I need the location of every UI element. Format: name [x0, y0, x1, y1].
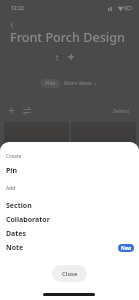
staticText: More ideas: [64, 80, 92, 87]
staticText: Pins: [45, 80, 56, 87]
button[interactable]: Collaborators: [54, 54, 61, 61]
staticText: Add: [6, 185, 16, 192]
button[interactable]: Pin: [0, 164, 139, 178]
staticText: New: [121, 245, 132, 251]
button[interactable]: Dates: [0, 227, 139, 241]
staticText: Note: [6, 243, 24, 253]
button[interactable]: [71, 121, 136, 151]
staticText: Dates: [6, 229, 27, 239]
button[interactable]: Pins: [40, 79, 60, 88]
button[interactable]: Section: [0, 199, 139, 213]
button[interactable]: Add: [6, 105, 17, 116]
staticText: Create: [6, 153, 22, 160]
staticText: Front Porch Design: [10, 29, 125, 46]
button[interactable]: More ideas: [64, 79, 96, 88]
staticText: Close: [62, 270, 78, 278]
staticText: Section: [6, 201, 32, 211]
button[interactable]: Collaborator: [0, 213, 139, 227]
staticText: Select: [113, 107, 130, 114]
button[interactable]: Sort: [21, 105, 33, 117]
button[interactable]: Note: [0, 241, 139, 255]
button[interactable]: Invite: [67, 53, 75, 61]
staticText: Pin: [6, 166, 17, 176]
button[interactable]: Close: [52, 265, 87, 282]
button[interactable]: Select: [110, 104, 133, 117]
button[interactable]: [4, 121, 69, 151]
staticText: 12:22: [11, 5, 24, 12]
button[interactable]: Back: [7, 20, 18, 31]
staticText: Collaborator: [6, 215, 50, 225]
